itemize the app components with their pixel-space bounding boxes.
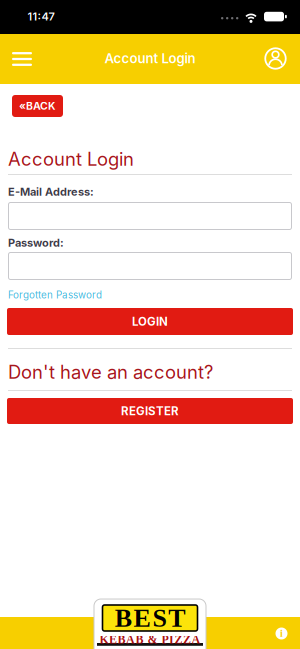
- button[interactable]: Information: [275, 627, 287, 639]
- button[interactable]: LOGIN: [7, 308, 293, 335]
- staticText: REGISTER: [121, 404, 179, 418]
- staticText: Password:: [8, 236, 64, 249]
- staticText: BEST: [115, 604, 185, 632]
- button[interactable]: Forgotten Password: [8, 289, 102, 301]
- staticText: Don't have an account?: [8, 361, 213, 383]
- staticText: KEBAB & PIZZA: [99, 633, 200, 646]
- button[interactable]: Account: [262, 45, 288, 71]
- staticText: Account Login: [8, 148, 134, 170]
- button[interactable]: Menu: [6, 46, 38, 72]
- staticText: «BACK: [19, 100, 56, 112]
- staticText: LOGIN: [132, 314, 168, 328]
- staticText: Forgotten Password: [8, 289, 102, 301]
- button[interactable]: Password: [8, 252, 292, 280]
- button[interactable]: E-Mail Address: [8, 202, 292, 230]
- button[interactable]: REGISTER: [7, 398, 293, 424]
- button[interactable]: «BACK: [12, 95, 63, 117]
- staticText: E-Mail Address:: [8, 185, 94, 198]
- staticText: Account Login: [104, 50, 195, 66]
- staticText: 11:47: [27, 10, 54, 23]
- staticText: i: [280, 628, 283, 639]
